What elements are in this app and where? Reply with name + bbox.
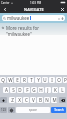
staticText: T xyxy=(30,77,33,83)
button[interactable]: E xyxy=(14,77,20,83)
button[interactable]: B xyxy=(37,97,43,103)
button[interactable]: Shift xyxy=(0,97,7,103)
button[interactable]: R xyxy=(21,77,27,83)
button[interactable]: V xyxy=(30,97,36,103)
staticText: S xyxy=(12,87,15,93)
staticText: Y xyxy=(37,77,40,83)
button[interactable]: C xyxy=(23,97,29,103)
staticText: Z xyxy=(11,97,14,103)
button[interactable]: Z xyxy=(9,97,15,103)
staticText: R xyxy=(23,77,26,83)
staticText: N xyxy=(45,97,49,103)
button[interactable]: L xyxy=(59,87,65,93)
button[interactable]: Back xyxy=(0,5,9,13)
button[interactable]: More results for xyxy=(0,23,67,35)
button[interactable]: Close xyxy=(58,5,67,13)
staticText: B xyxy=(39,97,42,103)
staticText: More results for xyxy=(6,25,39,31)
button[interactable]: J xyxy=(45,87,51,93)
button[interactable]: Clear text xyxy=(57,17,60,20)
staticText: V xyxy=(32,97,35,103)
staticText: Carrier xyxy=(1,1,10,5)
button[interactable]: N xyxy=(44,97,50,103)
staticText: U xyxy=(43,77,47,83)
staticText: 1:03 PM xyxy=(30,1,42,5)
button[interactable]: Switch keyboard xyxy=(8,107,15,113)
button[interactable]: A xyxy=(3,87,9,93)
staticText: NAVIGATE xyxy=(24,7,44,12)
button[interactable]: I xyxy=(49,77,55,83)
staticText: K xyxy=(54,87,57,93)
button[interactable]: T xyxy=(28,77,34,83)
button[interactable]: Q xyxy=(0,77,6,83)
staticText: milwaukee xyxy=(7,15,30,21)
staticText: 123 xyxy=(1,108,6,112)
button[interactable]: K xyxy=(52,87,58,93)
button[interactable]: Search xyxy=(51,107,66,113)
button[interactable]: milwaukee xyxy=(2,15,65,21)
staticText: X xyxy=(18,97,21,103)
button[interactable]: S xyxy=(10,87,16,93)
button[interactable]: Y xyxy=(35,77,41,83)
button[interactable]: W xyxy=(7,77,13,83)
staticText: D xyxy=(18,87,22,93)
button[interactable]: M xyxy=(51,97,57,103)
staticText: H xyxy=(39,87,43,93)
button[interactable]: O xyxy=(56,77,62,83)
button[interactable]: 123 xyxy=(0,107,7,113)
staticText: J xyxy=(47,87,49,93)
staticText: E xyxy=(16,77,19,83)
staticText: G xyxy=(32,87,36,93)
button[interactable]: Backspace xyxy=(59,97,66,103)
button[interactable]: D xyxy=(17,87,23,93)
button[interactable]: X xyxy=(16,97,22,103)
button[interactable]: P xyxy=(63,77,67,83)
staticText: Q xyxy=(1,77,5,83)
staticText: I xyxy=(51,77,53,83)
button[interactable]: G xyxy=(31,87,37,93)
staticText: "milwaukee" xyxy=(6,31,32,37)
staticText: O xyxy=(57,77,61,83)
staticText: W xyxy=(8,77,13,83)
button[interactable]: H xyxy=(38,87,44,93)
staticText: P xyxy=(64,77,67,83)
staticText: C xyxy=(25,97,28,103)
button[interactable]: space xyxy=(16,107,50,113)
staticText: A xyxy=(5,87,8,93)
staticText: F xyxy=(26,87,29,93)
staticText: L xyxy=(61,87,64,93)
button[interactable]: U xyxy=(42,77,48,83)
staticText: Search xyxy=(54,108,64,112)
staticText: space xyxy=(29,108,37,112)
staticText: M xyxy=(52,97,57,103)
button[interactable]: Voice search xyxy=(61,17,64,20)
button[interactable]: F xyxy=(24,87,30,93)
